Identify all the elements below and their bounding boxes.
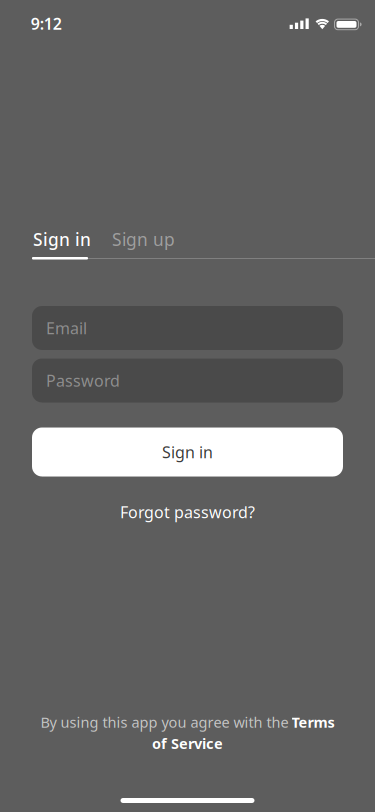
button[interactable]: Sign in (33, 228, 91, 251)
staticText: Sign in (33, 228, 91, 251)
button[interactable]: Password (32, 358, 343, 402)
staticText: Terms (292, 712, 335, 732)
staticText: Password (46, 370, 120, 391)
staticText: Forgot password? (120, 501, 255, 523)
button[interactable]: Email (32, 306, 343, 350)
button[interactable]: Forgot password? (120, 501, 255, 523)
staticText: Email (46, 317, 87, 339)
button[interactable]: Sign up (112, 228, 175, 251)
staticText: By using this app you agree with the (40, 712, 288, 732)
staticText: Sign in (162, 441, 213, 463)
button[interactable]: By using this app you agree with the (40, 712, 335, 753)
staticText: Sign up (112, 228, 175, 251)
staticText: 9:12 (31, 13, 62, 34)
staticText: of Service (152, 733, 223, 753)
button[interactable]: Sign in (32, 427, 343, 476)
